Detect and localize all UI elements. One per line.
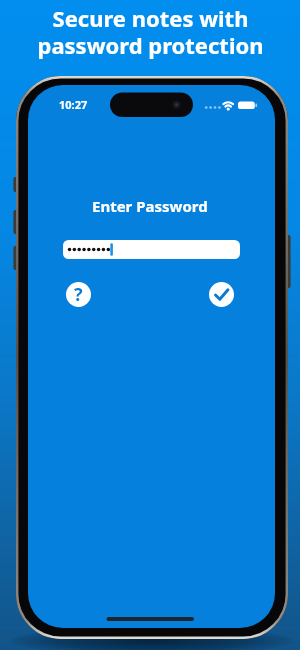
staticText: 10:27 [59, 97, 88, 112]
button[interactable] [209, 282, 234, 307]
button[interactable]: ? [66, 282, 91, 307]
staticText: ? [74, 282, 83, 307]
staticText: Enter Password [92, 196, 208, 216]
button[interactable] [63, 240, 240, 259]
staticText: Secure notes with password protection [37, 3, 264, 60]
